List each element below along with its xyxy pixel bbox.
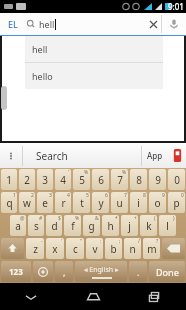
button[interactable]: 0	[168, 169, 185, 190]
button[interactable]: d	[46, 215, 62, 236]
staticText: %	[75, 215, 80, 222]
staticText: "	[80, 238, 83, 245]
staticText: /	[138, 238, 140, 245]
staticText: q	[6, 196, 13, 210]
button[interactable]: hell	[25, 36, 163, 62]
staticText: w	[23, 196, 31, 210]
button[interactable]: h	[102, 215, 119, 236]
button[interactable]: x	[46, 238, 64, 259]
staticText: (	[154, 215, 156, 222]
staticText: u	[116, 196, 123, 210]
staticText: )	[173, 215, 175, 222]
staticText: hell	[39, 18, 55, 30]
staticText: %	[122, 169, 127, 176]
button[interactable]: t	[73, 192, 90, 213]
staticText: ?	[156, 238, 159, 245]
button[interactable]: i	[130, 192, 147, 213]
button[interactable]: n	[124, 238, 141, 259]
button[interactable]: c	[66, 238, 84, 259]
staticText: 7	[124, 192, 127, 199]
button[interactable]: Comma	[55, 261, 73, 282]
staticText: 5	[86, 192, 89, 199]
button[interactable]: Done	[149, 261, 185, 282]
button[interactable]: hell	[26, 13, 161, 35]
staticText: :	[100, 238, 102, 245]
staticText: 9	[155, 173, 161, 187]
staticText: e	[42, 196, 48, 210]
button[interactable]: l	[159, 215, 176, 236]
staticText: *	[115, 215, 118, 222]
button[interactable]: v	[86, 238, 103, 259]
button[interactable]: b	[105, 238, 122, 259]
staticText: hello	[32, 70, 53, 82]
staticText: -	[41, 238, 43, 245]
button[interactable]: Recents	[124, 283, 186, 310]
button[interactable]: s	[28, 215, 44, 236]
button[interactable]: Clear	[145, 16, 161, 32]
button[interactable]: 1	[1, 169, 17, 190]
button[interactable]: 5	[73, 169, 90, 190]
button[interactable]: e	[37, 192, 53, 213]
button[interactable]: o	[149, 192, 166, 213]
button[interactable]: j	[121, 215, 138, 236]
button[interactable]: p	[168, 192, 185, 213]
staticText: l	[166, 219, 169, 233]
button[interactable]: Back	[0, 283, 62, 310]
staticText: b	[110, 242, 117, 256]
staticText: 3	[42, 173, 48, 187]
staticText: 4	[60, 173, 66, 187]
button[interactable]: hello	[25, 63, 163, 89]
staticText: t	[80, 196, 84, 210]
staticText: 9:01	[168, 1, 184, 12]
staticText: +	[134, 215, 137, 222]
staticText: x	[52, 242, 58, 256]
staticText: ◂ English ▸	[84, 265, 119, 275]
button[interactable]: a	[10, 215, 26, 236]
button[interactable]: 6	[92, 169, 109, 190]
staticText: ,	[63, 266, 66, 278]
staticText: r	[61, 196, 66, 210]
staticText: 2	[31, 192, 34, 199]
staticText: '	[68, 169, 70, 176]
staticText: 1	[13, 192, 16, 199]
button[interactable]: q	[1, 192, 17, 213]
button[interactable]: Search	[23, 143, 141, 168]
button[interactable]: k	[140, 215, 157, 236]
staticText: ;	[119, 238, 121, 245]
button[interactable]: Voice search	[162, 13, 186, 35]
button[interactable]: w	[19, 192, 35, 213]
staticText: Search	[36, 149, 68, 163]
button[interactable]: 7	[111, 169, 128, 190]
button[interactable]: 3	[37, 169, 53, 190]
button[interactable]: Numbers	[1, 261, 31, 282]
button[interactable]: Home	[62, 283, 124, 310]
button[interactable]: Period	[129, 261, 147, 282]
staticText: 123	[9, 266, 23, 277]
button[interactable]: z	[26, 238, 44, 259]
button[interactable]: Space	[75, 261, 127, 282]
button[interactable]: g	[83, 215, 100, 236]
button[interactable]: More options	[0, 143, 22, 168]
staticText: 6	[98, 173, 104, 187]
button[interactable]: Keyboard settings	[168, 143, 186, 168]
button[interactable]: u	[111, 192, 128, 213]
button[interactable]: 4	[55, 169, 71, 190]
staticText: App	[147, 150, 163, 161]
button[interactable]: y	[92, 192, 109, 213]
button[interactable]: 8	[130, 169, 147, 190]
staticText: $	[58, 215, 61, 222]
staticText: &	[95, 215, 99, 222]
button[interactable]: f	[64, 215, 81, 236]
button[interactable]: 9	[149, 169, 166, 190]
button[interactable]: 2	[19, 169, 35, 190]
staticText: z	[33, 242, 38, 256]
staticText: 1	[6, 173, 12, 187]
button[interactable]: Backspace	[162, 238, 185, 259]
button[interactable]: App	[142, 143, 168, 168]
button[interactable]: Emoji	[33, 261, 53, 282]
button[interactable]: Shift	[1, 238, 24, 259]
button[interactable]: m	[143, 238, 160, 259]
button[interactable]: r	[55, 192, 71, 213]
staticText: 9	[162, 192, 165, 199]
button[interactable]: EL	[0, 13, 26, 35]
